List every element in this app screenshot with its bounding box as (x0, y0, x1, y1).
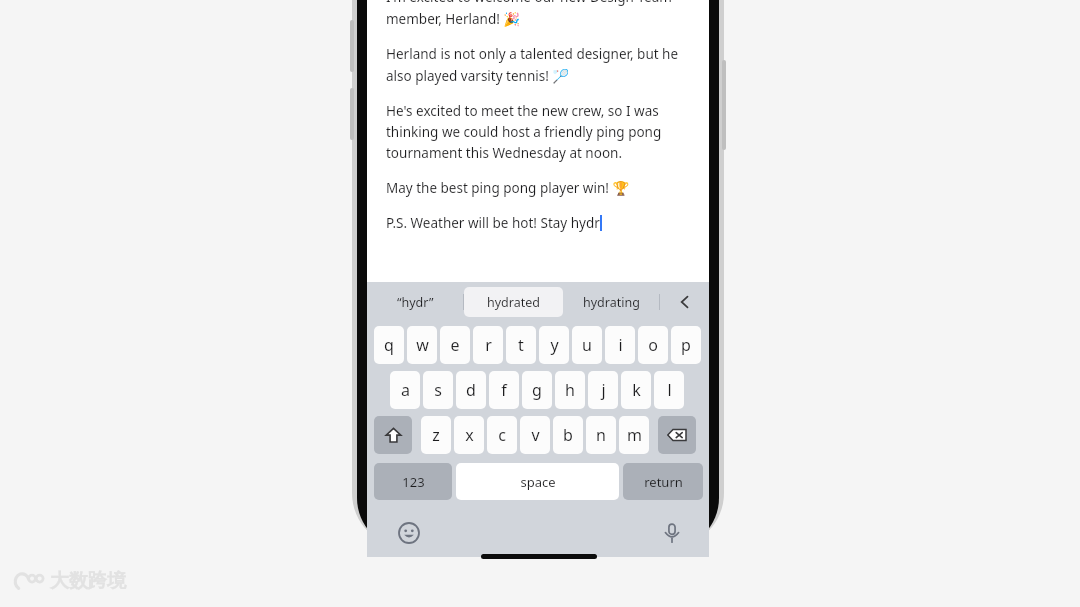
button[interactable]: y (539, 326, 569, 364)
staticText: May the best ping pong player win! 🏆 (386, 179, 630, 197)
button[interactable]: x (454, 416, 484, 454)
button[interactable]: hydrated (464, 287, 563, 317)
staticText: u (582, 334, 592, 356)
staticText: o (648, 334, 658, 356)
button[interactable]: u (572, 326, 602, 364)
staticText: h (565, 379, 575, 401)
button[interactable]: z (421, 416, 451, 454)
staticText: Herland is not only a talented designer,… (386, 45, 679, 85)
staticText: hydrated (487, 294, 540, 311)
button[interactable]: t (506, 326, 536, 364)
button[interactable]: Emoji (395, 519, 423, 547)
staticText: j (601, 379, 606, 401)
button[interactable]: p (671, 326, 701, 364)
button[interactable]: 123 (374, 463, 452, 500)
staticText: hydrating (583, 294, 640, 311)
button[interactable]: j (588, 371, 618, 409)
button[interactable]: b (553, 416, 583, 454)
button[interactable]: i (605, 326, 635, 364)
staticText: q (384, 334, 394, 356)
staticText: v (531, 424, 540, 446)
staticText: g (532, 379, 542, 401)
button[interactable]: Shift (374, 416, 412, 454)
staticText: 123 (402, 473, 425, 491)
button[interactable]: h (555, 371, 585, 409)
button[interactable]: Previous suggestions (660, 284, 709, 320)
staticText: s (434, 379, 442, 401)
staticText: r (485, 334, 492, 356)
staticText: w (416, 334, 429, 356)
staticText: d (466, 379, 476, 401)
button[interactable]: s (423, 371, 453, 409)
staticText: c (498, 424, 506, 446)
staticText: a (401, 379, 410, 401)
button[interactable]: k (621, 371, 651, 409)
button[interactable]: a (390, 371, 420, 409)
staticText: 大数跨境 (50, 569, 126, 593)
button[interactable]: l (654, 371, 684, 409)
button[interactable]: m (619, 416, 649, 454)
staticText: z (432, 424, 440, 446)
button[interactable]: return (623, 463, 703, 500)
button[interactable]: d (456, 371, 486, 409)
button[interactable]: q (374, 326, 404, 364)
staticText: b (563, 424, 573, 446)
staticText: m (627, 424, 642, 446)
staticText: “hydr” (397, 294, 434, 311)
staticText: e (450, 334, 460, 356)
button[interactable]: o (638, 326, 668, 364)
staticText: x (465, 424, 474, 446)
staticText: f (501, 379, 507, 401)
button[interactable]: f (489, 371, 519, 409)
button[interactable]: hydrating (563, 284, 659, 320)
staticText: l (667, 379, 672, 401)
button[interactable]: g (522, 371, 552, 409)
button[interactable]: c (487, 416, 517, 454)
button[interactable]: n (586, 416, 616, 454)
button[interactable]: v (520, 416, 550, 454)
button[interactable]: e (440, 326, 470, 364)
staticText: He's excited to meet the new crew, so I … (386, 102, 662, 162)
button[interactable]: space (456, 463, 619, 500)
button[interactable]: Dictation (658, 519, 686, 547)
staticText: t (518, 334, 524, 356)
button[interactable]: Backspace (658, 416, 696, 454)
staticText: i (618, 334, 623, 356)
staticText: space (520, 473, 556, 491)
staticText: I'm excited to welcome our new Design Te… (386, 0, 672, 28)
staticText: P.S. Weather will be hot! Stay hydr (386, 214, 600, 232)
staticText: n (596, 424, 606, 446)
staticText: p (681, 334, 691, 356)
staticText: k (632, 379, 641, 401)
staticText: return (644, 473, 683, 491)
staticText: y (550, 334, 559, 356)
button[interactable]: “hydr” (367, 284, 463, 320)
button[interactable]: r (473, 326, 503, 364)
button[interactable]: w (407, 326, 437, 364)
